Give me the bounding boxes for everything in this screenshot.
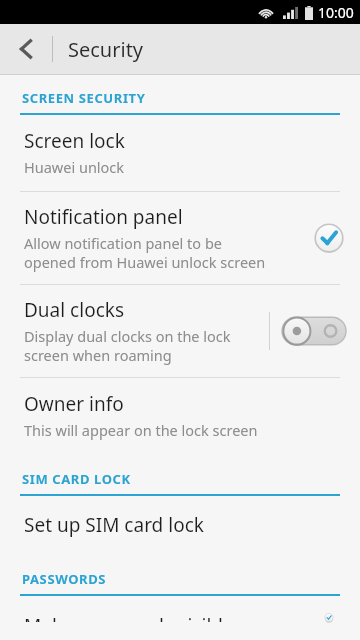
staticText: SCREEN SECURITY — [22, 89, 146, 107]
staticText: 10:00 — [318, 3, 354, 22]
staticText: SIM CARD LOCK — [22, 470, 131, 488]
staticText: Notification panel — [24, 204, 183, 230]
button[interactable]: Set up SIM card lock — [0, 496, 360, 556]
staticText: Owner info — [24, 391, 124, 417]
button[interactable]: Notification panel — [0, 192, 360, 284]
staticText: Display dual clocks on the lock screen w… — [24, 326, 231, 365]
button[interactable]: Back — [0, 24, 52, 74]
button[interactable]: Owner info — [0, 378, 360, 454]
staticText: PASSWORDS — [22, 570, 107, 588]
button[interactable]: Make passwords visible — [0, 596, 360, 640]
staticText: Huawei unlock — [24, 157, 125, 177]
button[interactable]: Toggle checkbox — [312, 613, 346, 622]
staticText: Make passwords visible — [24, 613, 234, 622]
button[interactable]: Dual clocks switch — [282, 316, 346, 346]
staticText: Screen lock — [24, 128, 125, 154]
staticText: Set up SIM card lock — [24, 512, 204, 538]
staticText: Security — [68, 36, 144, 63]
staticText: This will appear on the lock screen — [24, 420, 258, 440]
button[interactable]: Screen lock — [0, 115, 360, 191]
button[interactable]: Toggle checkbox — [312, 221, 346, 255]
staticText: Dual clocks — [24, 297, 124, 323]
staticText: Allow notification panel to be opened fr… — [24, 233, 266, 272]
button[interactable]: Dual clocks — [0, 285, 360, 377]
